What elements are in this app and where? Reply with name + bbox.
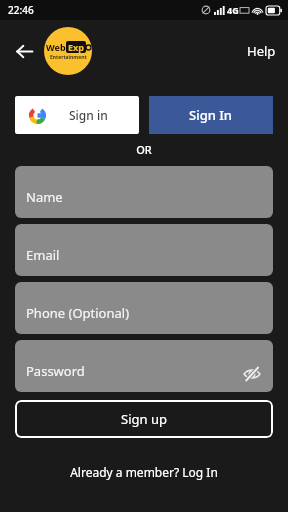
button[interactable]: Show password — [241, 363, 263, 385]
button[interactable]: Email — [15, 224, 273, 276]
button[interactable]: Name — [15, 166, 273, 218]
button[interactable]: Sign In — [149, 96, 273, 134]
button[interactable]: Back — [8, 35, 40, 67]
staticText: 22:46 — [8, 3, 34, 17]
staticText: Phone (Optional) — [26, 304, 130, 322]
staticText: Sign in — [69, 107, 108, 123]
staticText: Name — [26, 188, 63, 206]
staticText: Sign up — [121, 410, 167, 428]
staticText: Web — [46, 41, 66, 53]
staticText: Password — [26, 362, 85, 380]
staticText: OR — [0, 142, 288, 157]
staticText: Email — [26, 246, 60, 264]
staticText: Sign In — [189, 106, 233, 124]
button[interactable]: Phone (Optional) — [15, 282, 273, 334]
button[interactable]: Help — [235, 36, 288, 66]
staticText: Entertainment — [50, 54, 87, 61]
staticText: 4G — [227, 4, 239, 16]
button[interactable]: Sign up — [15, 400, 273, 438]
button[interactable]: Password — [15, 340, 273, 392]
staticText: Exp — [68, 41, 84, 53]
button[interactable]: Sign in — [15, 96, 139, 134]
button[interactable]: Already a member? Log In — [0, 460, 288, 484]
